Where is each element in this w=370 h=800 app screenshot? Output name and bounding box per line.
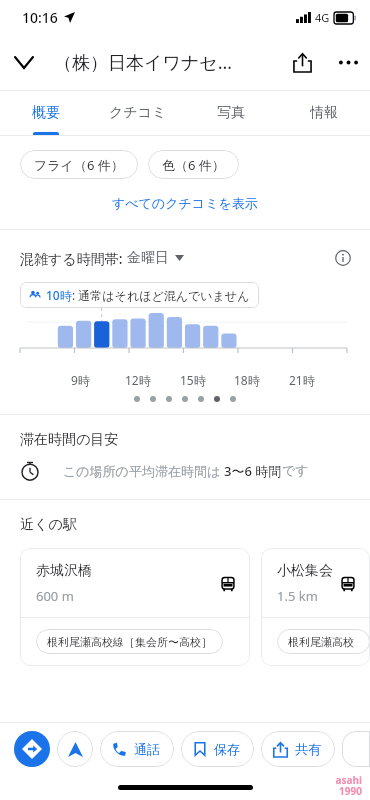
staticText: フライ（6 件）: [34, 156, 124, 174]
staticText: 1.5 km: [277, 587, 318, 605]
button[interactable]: 共有: [261, 731, 335, 767]
staticText: すべてのクチコミを表示: [112, 195, 258, 211]
staticText: 4G: [315, 10, 330, 25]
button[interactable]: 赤城沢橋: [20, 548, 250, 666]
button[interactable]: Collapse: [0, 38, 48, 86]
staticText: 金曜日: [127, 249, 169, 267]
button[interactable]: クチコミ: [92, 91, 184, 135]
staticText: 概要: [32, 104, 60, 122]
staticText: です: [282, 462, 309, 478]
button[interactable]: 通話: [100, 731, 174, 767]
button[interactable]: 概要: [0, 91, 92, 135]
staticText: 混雑する時間帯:: [20, 249, 127, 268]
button[interactable]: すべてのクチコミを表示: [104, 193, 266, 213]
button[interactable]: 色（6 件）: [148, 150, 239, 179]
button[interactable]: More actions: [342, 731, 370, 767]
button[interactable]: 写真: [184, 91, 277, 135]
button[interactable]: フライ（6 件）: [20, 150, 138, 179]
staticText: 近くの駅: [20, 516, 77, 534]
staticText: 小松集会所: [277, 562, 340, 580]
staticText: 赤城沢橋: [36, 562, 92, 580]
button[interactable]: Start navigation: [57, 731, 93, 767]
staticText: 滞在時間の目安: [20, 431, 119, 449]
button[interactable]: Directions: [14, 731, 50, 767]
staticText: 10:16: [22, 8, 58, 27]
staticText: 保存: [214, 741, 240, 757]
staticText: 色（6 件）: [162, 156, 225, 174]
button[interactable]: 保存: [181, 731, 254, 767]
staticText: 写真: [217, 104, 245, 122]
staticText: （株）日本イワナセ…: [54, 50, 278, 75]
staticText: 根利尾瀬高校線［集: [288, 635, 359, 649]
button[interactable]: 金曜日: [127, 249, 184, 267]
staticText: 根利尾瀬高校線［集会所〜高校］: [47, 635, 212, 649]
staticText: 600 m: [36, 587, 74, 605]
button[interactable]: Share: [278, 38, 326, 86]
staticText: : 通常はそれほど混んでいません: [72, 287, 250, 303]
staticText: 15時: [180, 372, 206, 388]
button[interactable]: More options: [326, 40, 370, 84]
button[interactable]: Info: [330, 245, 356, 271]
staticText: この場所の平均滞在時間は: [63, 462, 224, 480]
button[interactable]: 小松集会所: [261, 548, 370, 666]
staticText: 21時: [289, 372, 315, 388]
staticText: 12時: [125, 372, 151, 388]
staticText: 通話: [134, 741, 160, 757]
button[interactable]: 情報: [277, 91, 370, 135]
staticText: 18時: [234, 372, 260, 388]
staticText: 共有: [295, 741, 321, 757]
staticText: 10時: [46, 287, 72, 303]
staticText: 情報: [310, 104, 338, 122]
staticText: asahi 1990: [335, 773, 362, 798]
staticText: 3〜6 時間: [224, 462, 282, 480]
staticText: 9時: [71, 372, 90, 388]
staticText: クチコミ: [109, 104, 167, 122]
